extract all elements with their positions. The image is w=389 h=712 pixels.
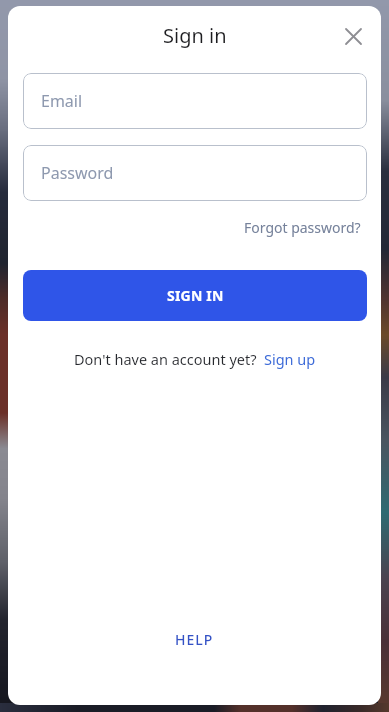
button[interactable]: Password	[23, 145, 367, 201]
staticText: Don't have an account yet?	[74, 349, 257, 369]
staticText: SIGN IN	[167, 286, 224, 305]
staticText: Password	[41, 162, 114, 184]
button[interactable]: Email	[23, 73, 367, 129]
staticText: Forgot password?	[244, 218, 361, 237]
button[interactable]: Sign up	[264, 349, 316, 369]
staticText: Sign up	[264, 349, 316, 369]
button[interactable]: HELP	[175, 630, 214, 649]
button[interactable]: SIGN IN	[23, 270, 367, 321]
staticText: Sign in	[163, 22, 227, 49]
button[interactable]: Forgot password?	[244, 218, 361, 237]
button[interactable]	[333, 16, 373, 56]
staticText: Email	[41, 90, 83, 112]
staticText: HELP	[175, 630, 214, 649]
